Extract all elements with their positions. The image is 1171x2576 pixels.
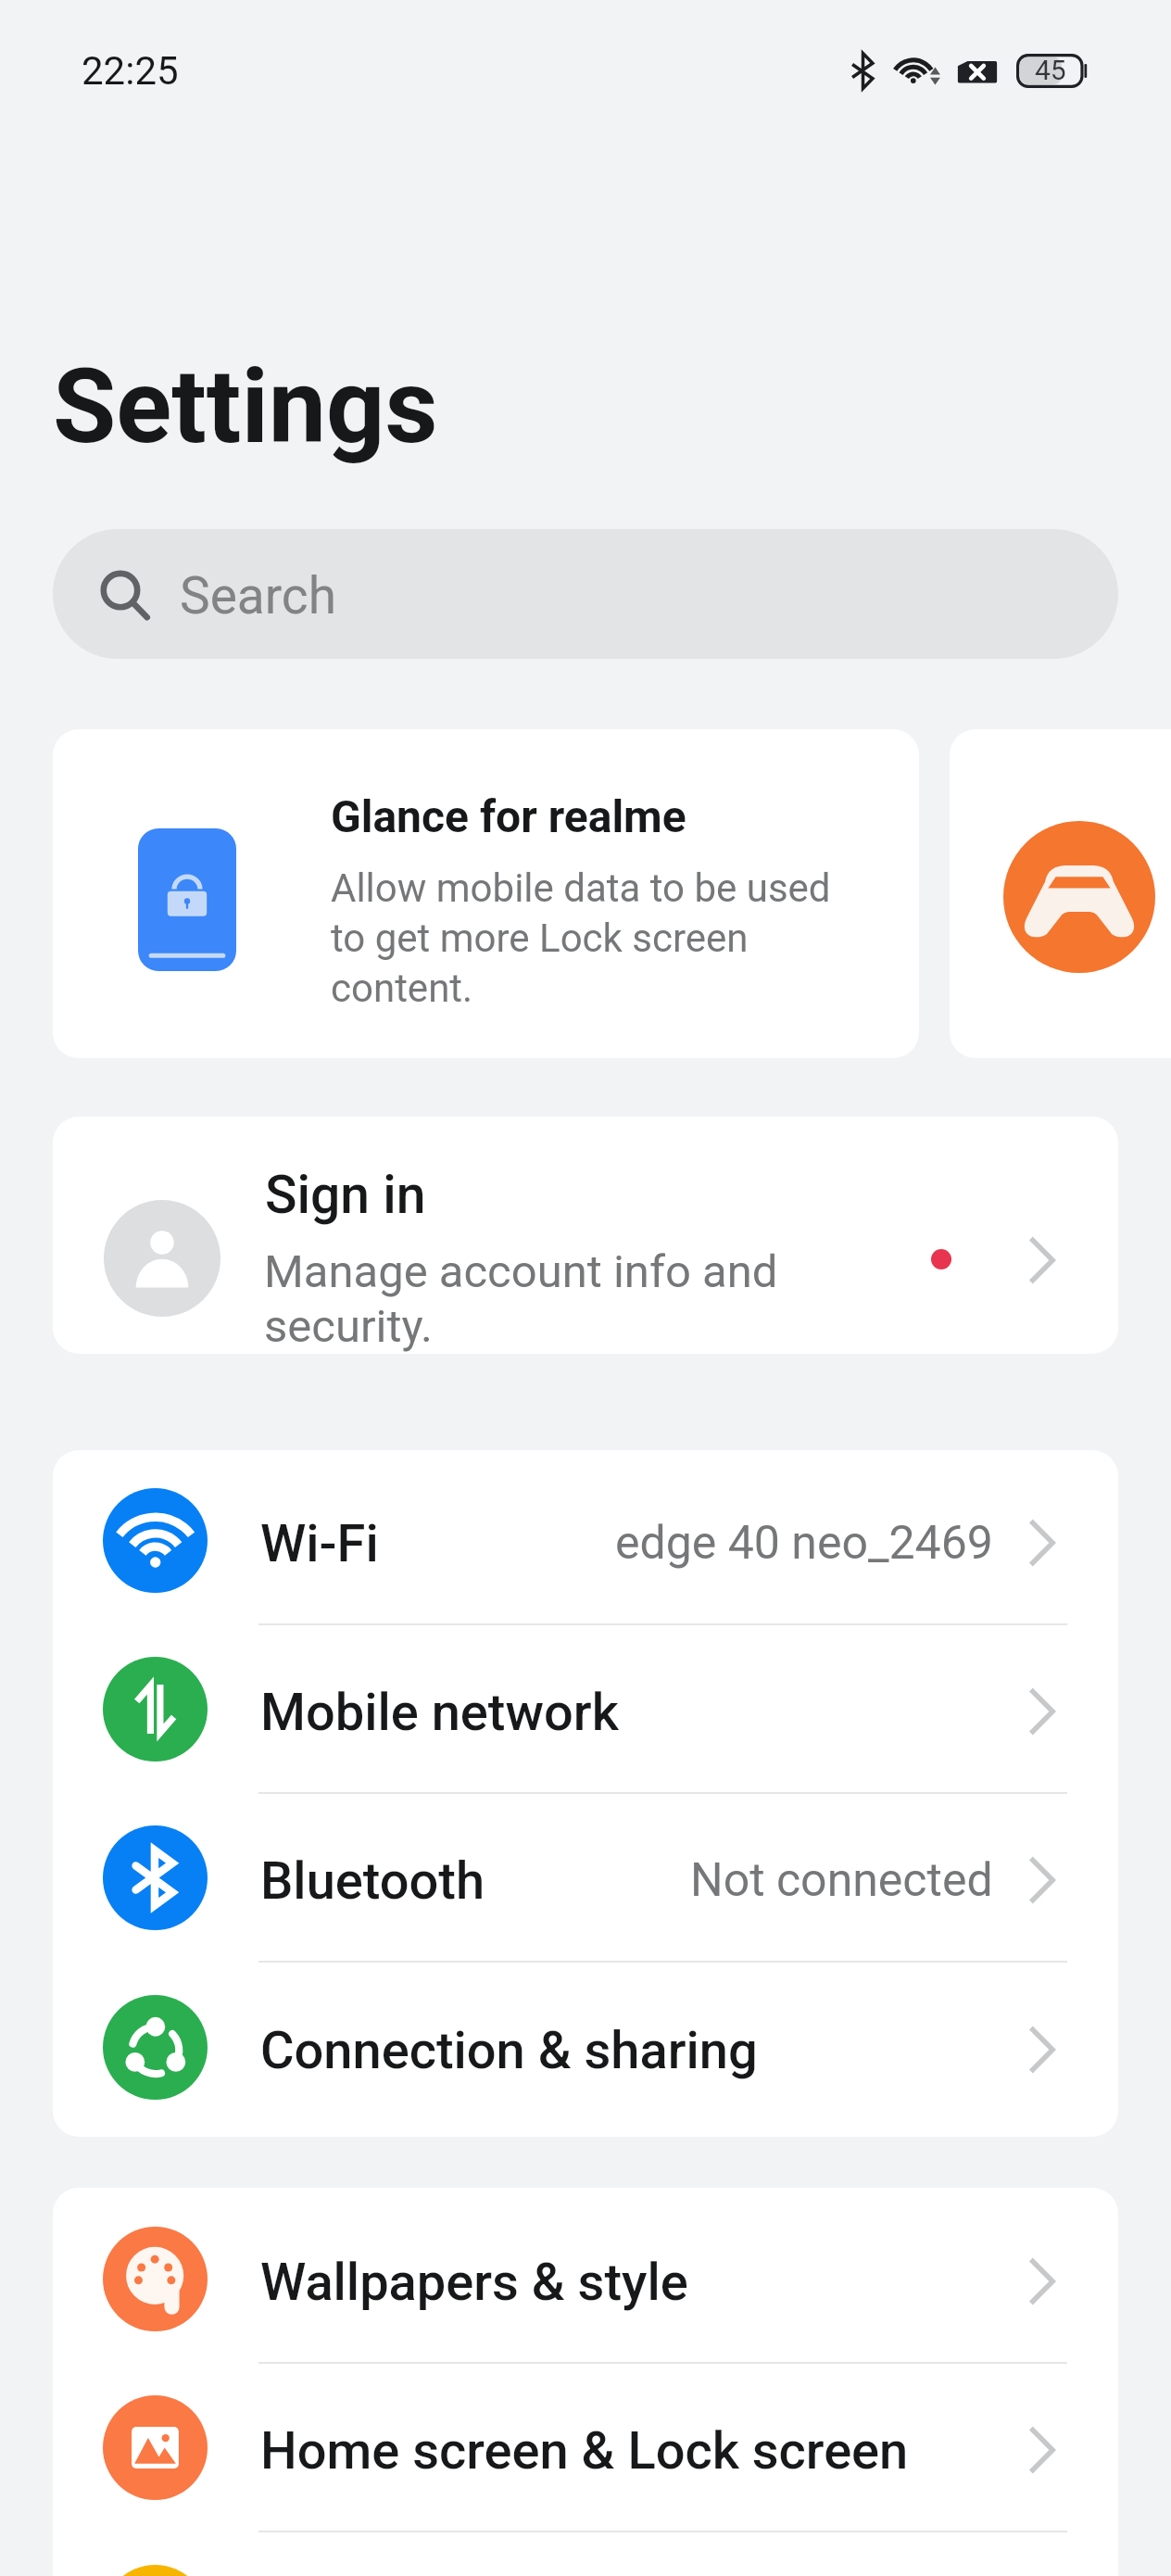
staticText: Mobile network <box>260 1682 619 1743</box>
button[interactable]: Mobile network <box>53 1625 1118 1792</box>
staticText: Home screen & Lock screen <box>260 2420 909 2481</box>
button[interactable]: Glance for realme <box>53 729 919 1058</box>
button[interactable]: Home screen & Lock screen <box>53 2364 1118 2531</box>
staticText: 22:25 <box>82 48 179 94</box>
staticText: Allow mobile data to be used to get more… <box>331 865 850 1011</box>
button[interactable]: Game Space <box>950 729 1171 1058</box>
staticText: edge 40 neo_2469 <box>615 1516 993 1571</box>
staticText: Search <box>180 566 336 625</box>
staticText: Manage account info and security. <box>264 1245 801 1353</box>
button[interactable]: Search settings <box>53 529 1118 659</box>
staticText: Bluetooth <box>260 1850 485 1912</box>
button[interactable]: Sign in <box>53 1117 1118 1354</box>
button[interactable]: Wallpapers & style <box>53 2195 1118 2362</box>
staticText: 45 <box>1035 54 1066 86</box>
button[interactable]: Wi-Fi <box>53 1457 1118 1623</box>
staticText: Connection & sharing <box>260 2020 758 2081</box>
staticText: Settings <box>53 347 438 467</box>
button[interactable]: Sound & vibration <box>53 2532 1118 2576</box>
staticText: Wi-Fi <box>260 1513 379 1574</box>
staticText: Not connected <box>690 1853 993 1908</box>
button[interactable]: Connection & sharing <box>53 1963 1118 2131</box>
staticText: Sign in <box>265 1164 426 1226</box>
button[interactable]: Bluetooth <box>53 1794 1118 1961</box>
staticText: Glance for realme <box>331 790 686 842</box>
staticText: Wallpapers & style <box>260 2252 688 2313</box>
